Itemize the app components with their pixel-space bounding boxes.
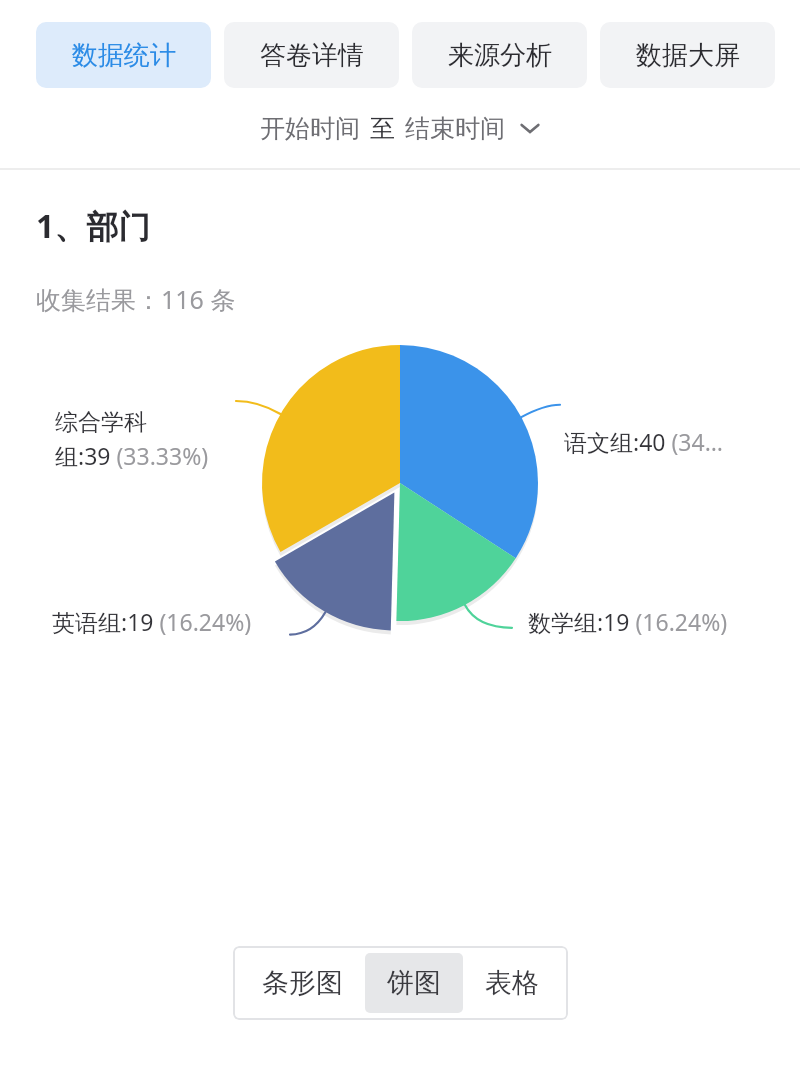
staticText: 1、部门 — [36, 204, 151, 248]
button[interactable]: 条形图 — [240, 953, 365, 1013]
staticText: 语文组:40 (34… — [564, 426, 723, 457]
staticText: 数据大屏 — [636, 39, 740, 72]
staticText: 收集结果：116 条 — [36, 282, 236, 316]
staticText: 英语组:19 (16.24%) — [52, 606, 252, 637]
staticText: 组:39 (33.33%) — [55, 440, 209, 471]
staticText: 至 — [370, 113, 395, 144]
staticText: 来源分析 — [448, 39, 552, 72]
button[interactable]: 开始时间 — [0, 88, 800, 168]
staticText: 数据统计 — [72, 39, 176, 72]
staticText: 数学组:19 (16.24%) — [528, 606, 728, 637]
button[interactable]: 数据大屏 — [600, 22, 775, 88]
button[interactable]: 饼图 — [365, 953, 463, 1013]
button[interactable]: 数据统计 — [36, 22, 211, 88]
staticText: 开始时间 — [260, 113, 360, 144]
other: 部门分布饼图 — [0, 316, 800, 876]
staticText: 综合学科 — [55, 408, 147, 437]
staticText: 答卷详情 — [260, 39, 364, 72]
staticText: 饼图 — [387, 966, 441, 1000]
button[interactable]: 答卷详情 — [224, 22, 399, 88]
staticText: 条形图 — [262, 966, 343, 1000]
button[interactable]: 来源分析 — [412, 22, 587, 88]
staticText: 结束时间 — [405, 113, 505, 144]
button[interactable]: 表格 — [463, 953, 561, 1013]
staticText: 表格 — [485, 966, 539, 1000]
